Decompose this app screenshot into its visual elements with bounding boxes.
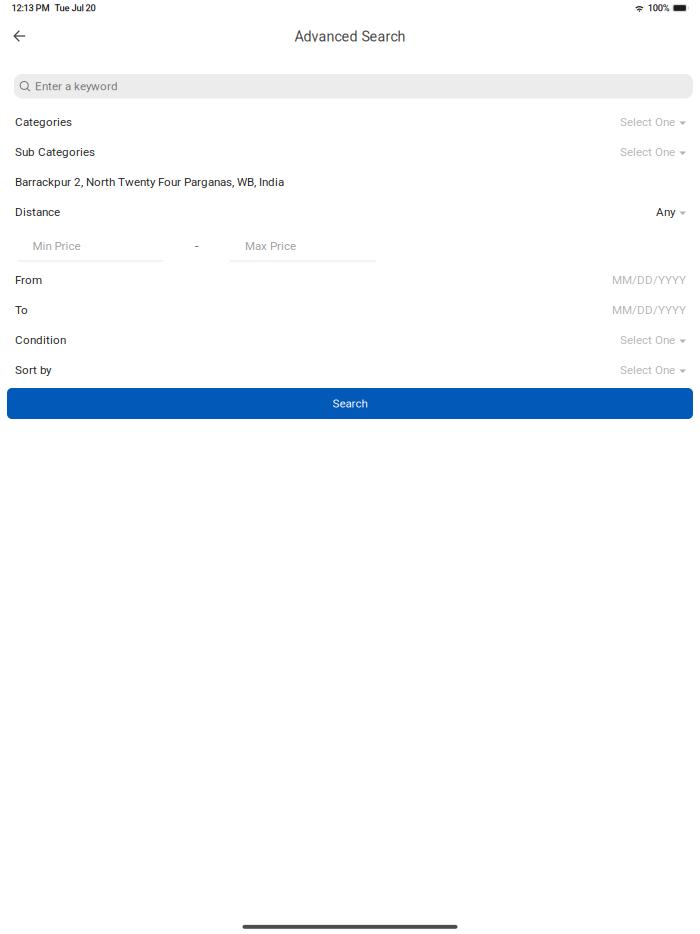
staticText: - [195, 239, 198, 253]
button[interactable]: Barrackpur 2, North Twenty Four Parganas… [0, 167, 700, 197]
staticText: Search [332, 397, 367, 410]
staticText: 12:13 PM [11, 2, 49, 13]
staticText: From [15, 273, 42, 287]
button[interactable]: Categories [0, 107, 700, 137]
staticText: Select One [620, 115, 675, 129]
button[interactable]: Enter a keyword [14, 74, 693, 98]
button[interactable]: Search [7, 388, 693, 419]
staticText: Max Price [245, 239, 296, 253]
button[interactable]: From [0, 265, 700, 295]
staticText: Distance [15, 205, 60, 219]
button[interactable]: Min Price [17, 227, 163, 265]
staticText: Categories [15, 115, 72, 129]
button[interactable]: Condition [0, 325, 700, 355]
staticText: Sort by [15, 363, 51, 377]
staticText: Barrackpur 2, North Twenty Four Parganas… [15, 175, 284, 189]
staticText: Any [656, 205, 675, 219]
staticText: MM/DD/YYYY [612, 303, 686, 317]
staticText: To [15, 303, 28, 317]
button[interactable]: Max Price [230, 227, 375, 265]
staticText: Select One [620, 145, 675, 159]
staticText: Enter a keyword [35, 79, 118, 93]
staticText: MM/DD/YYYY [612, 273, 686, 287]
staticText: Advanced Search [294, 28, 405, 45]
button[interactable]: Sort by [0, 355, 700, 385]
staticText: Sub Categories [15, 145, 95, 159]
staticText: Select One [620, 363, 675, 377]
staticText: Tue Jul 20 [54, 2, 95, 13]
staticText: Min Price [32, 239, 80, 253]
staticText: 100% [648, 2, 670, 13]
button[interactable]: To [0, 295, 700, 325]
staticText: Condition [15, 333, 66, 347]
button[interactable]: Distance [0, 197, 700, 227]
staticText: Select One [620, 333, 675, 347]
button[interactable]: Sub Categories [0, 137, 700, 167]
button[interactable]: Back [0, 16, 39, 54]
